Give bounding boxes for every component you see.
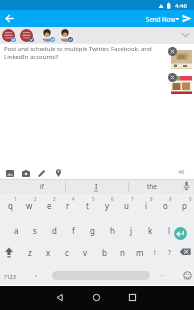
button[interactable]: [41, 29, 54, 42]
button[interactable]: o: [156, 198, 174, 212]
staticText: if: [40, 182, 44, 191]
button[interactable]: u: [117, 198, 135, 212]
staticText: 6: [111, 196, 114, 202]
staticText: I: [95, 182, 98, 191]
button[interactable]: i: [137, 198, 155, 212]
button[interactable]: [183, 271, 192, 280]
button[interactable]: !: [146, 245, 164, 259]
button[interactable]: [171, 76, 192, 94]
staticText: r: [66, 200, 70, 211]
button[interactable]: m: [131, 245, 149, 259]
button[interactable]: r: [59, 198, 77, 212]
staticText: 5: [92, 196, 95, 202]
staticText: e: [47, 200, 52, 211]
staticText: t: [86, 200, 89, 211]
button[interactable]: t: [78, 198, 96, 212]
staticText: f: [72, 225, 75, 236]
staticText: v: [83, 247, 88, 258]
staticText: !: [154, 248, 156, 257]
button[interactable]: z: [21, 245, 39, 259]
button[interactable]: [52, 271, 150, 280]
staticText: 4:46: [175, 2, 187, 10]
button[interactable]: [91, 292, 102, 303]
staticText: g: [90, 225, 95, 236]
staticText: .: [161, 269, 163, 279]
staticText: x: [46, 247, 51, 258]
staticText: the: [147, 182, 158, 191]
button[interactable]: [168, 73, 177, 82]
staticText: Post and schedule to multiple Twitter, F…: [4, 45, 152, 61]
button[interactable]: I: [74, 180, 118, 193]
button[interactable]: [127, 292, 138, 303]
staticText: 8: [150, 196, 153, 202]
button[interactable]: v: [76, 245, 94, 259]
button[interactable]: [168, 47, 177, 56]
staticText: Send Now: [146, 15, 176, 23]
button[interactable]: h: [103, 223, 121, 237]
button[interactable]: the: [130, 180, 174, 193]
staticText: h: [110, 225, 115, 236]
staticText: 9: [169, 196, 172, 202]
button[interactable]: [3, 246, 15, 258]
staticText: 3: [53, 196, 56, 202]
button[interactable]: x: [39, 245, 57, 259]
button[interactable]: d: [45, 223, 63, 237]
staticText: i: [145, 200, 148, 211]
staticText: j: [130, 225, 133, 236]
staticText: z: [28, 247, 32, 258]
button[interactable]: Send Now: [146, 12, 180, 25]
button[interactable]: [179, 247, 192, 257]
button[interactable]: [54, 292, 65, 303]
button[interactable]: [171, 50, 192, 69]
button[interactable]: [22, 170, 30, 177]
staticText: p: [182, 200, 187, 211]
button[interactable]: [183, 181, 190, 192]
staticText: c: [65, 247, 69, 258]
staticText: d: [52, 225, 57, 236]
button[interactable]: f: [64, 223, 82, 237]
button[interactable]: [20, 29, 33, 42]
button[interactable]: [6, 170, 14, 177]
staticText: u: [124, 200, 129, 211]
button[interactable]: [2, 29, 15, 42]
button[interactable]: a: [7, 223, 25, 237]
staticText: k: [148, 225, 153, 236]
staticText: q: [8, 200, 13, 211]
staticText: l: [168, 225, 171, 236]
staticText: ?123: [4, 273, 16, 280]
button[interactable]: y: [98, 198, 116, 212]
button[interactable]: q: [1, 198, 19, 212]
staticText: 1: [14, 196, 17, 202]
button[interactable]: l: [160, 223, 178, 237]
button[interactable]: [174, 227, 187, 240]
staticText: ?: [168, 248, 171, 257]
button[interactable]: b: [95, 245, 113, 259]
button[interactable]: .: [153, 267, 171, 281]
staticText: m: [136, 247, 144, 258]
button[interactable]: [55, 169, 62, 177]
staticText: o: [163, 200, 168, 211]
button[interactable]: ?123: [1, 269, 19, 283]
button[interactable]: ,: [27, 267, 45, 281]
staticText: s: [33, 225, 37, 236]
button[interactable]: w: [20, 198, 38, 212]
button[interactable]: if: [20, 180, 64, 193]
button[interactable]: p: [175, 198, 193, 212]
button[interactable]: s: [26, 223, 44, 237]
button[interactable]: n: [113, 245, 131, 259]
button[interactable]: ?: [160, 245, 178, 259]
button[interactable]: [3, 12, 16, 25]
staticText: a: [14, 225, 19, 236]
staticText: n: [120, 247, 125, 258]
button[interactable]: j: [122, 223, 140, 237]
button[interactable]: [182, 14, 192, 24]
button[interactable]: [59, 29, 72, 42]
staticText: 4: [72, 196, 75, 202]
staticText: 46: [178, 168, 185, 175]
staticText: w: [26, 200, 33, 211]
button[interactable]: k: [141, 223, 159, 237]
button[interactable]: [38, 170, 46, 177]
button[interactable]: g: [83, 223, 101, 237]
button[interactable]: e: [40, 198, 58, 212]
button[interactable]: c: [58, 245, 76, 259]
